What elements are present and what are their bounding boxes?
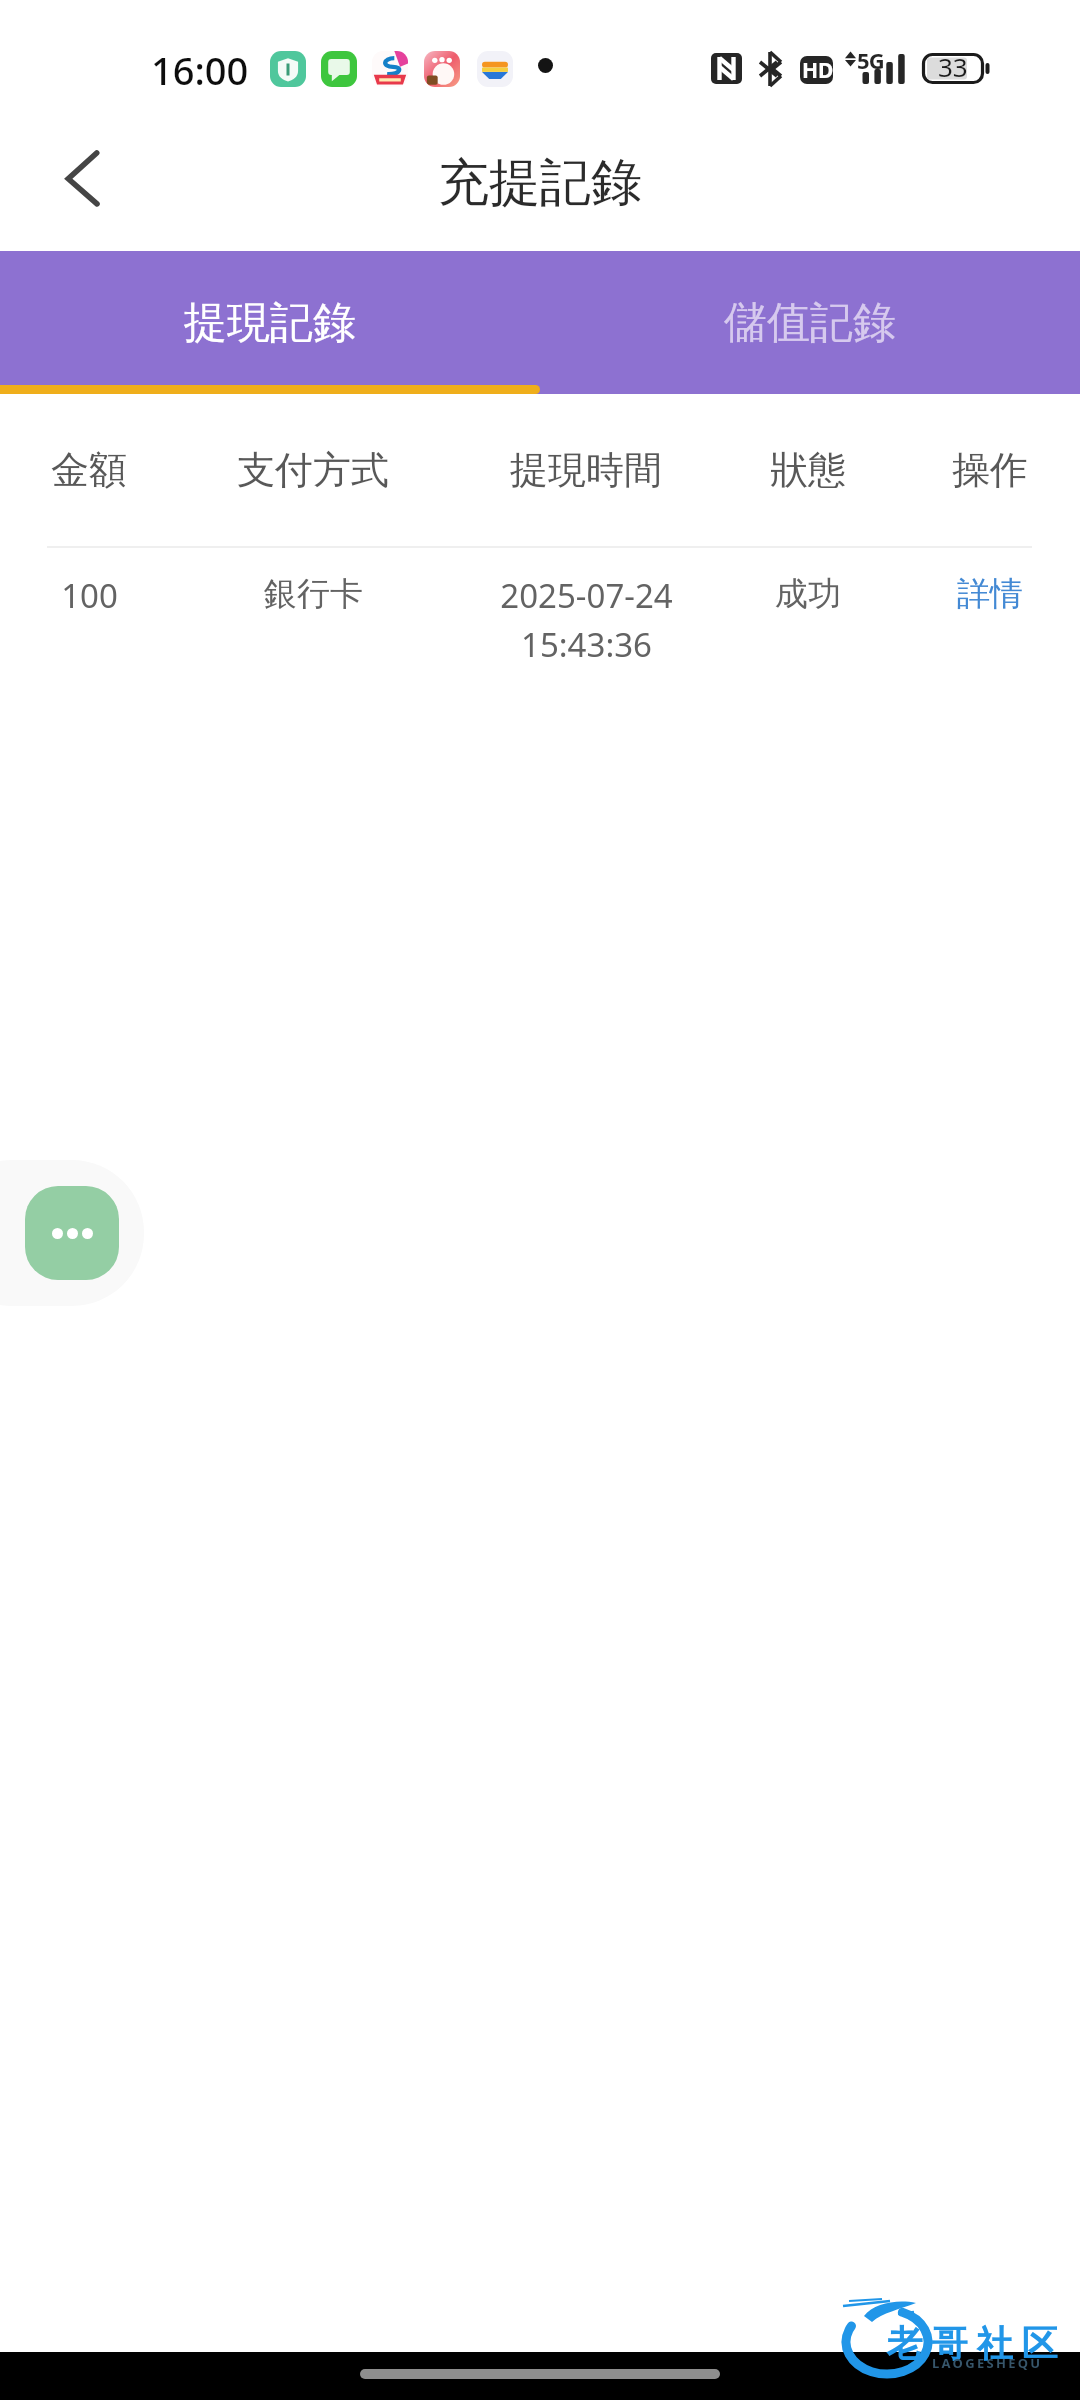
staticText: 充提記錄 xyxy=(0,151,1080,215)
staticText: 銀行卡 xyxy=(264,573,363,615)
staticText: 2025-07-24 15:43:36 xyxy=(500,573,673,666)
staticText: 5G xyxy=(857,45,884,75)
staticText: 老哥社区 xyxy=(882,2321,1062,2366)
staticText: 儲值記錄 xyxy=(724,296,896,350)
staticText: 支付方式 xyxy=(237,446,389,494)
staticText: 詳情 xyxy=(957,573,1023,615)
staticText: HD xyxy=(802,56,834,85)
staticText: 狀態 xyxy=(770,446,846,494)
staticText: 100 xyxy=(61,573,118,618)
staticText: 金額 xyxy=(51,446,127,494)
button[interactable]: Back xyxy=(38,140,126,216)
staticText: LAOGESHEQU xyxy=(932,2354,1043,2372)
button[interactable]: More options xyxy=(25,1186,119,1280)
staticText: 操作 xyxy=(952,446,1028,494)
staticText: 33 xyxy=(938,49,968,84)
button[interactable]: 提現記錄 xyxy=(0,251,540,394)
button[interactable]: 詳情 xyxy=(850,573,1080,615)
staticText: 成功 xyxy=(775,573,841,615)
staticText: 提現記錄 xyxy=(184,296,356,350)
staticText: 16:00 xyxy=(151,44,249,96)
staticText: 提現時間 xyxy=(510,446,662,494)
button[interactable]: 儲值記錄 xyxy=(540,251,1080,394)
